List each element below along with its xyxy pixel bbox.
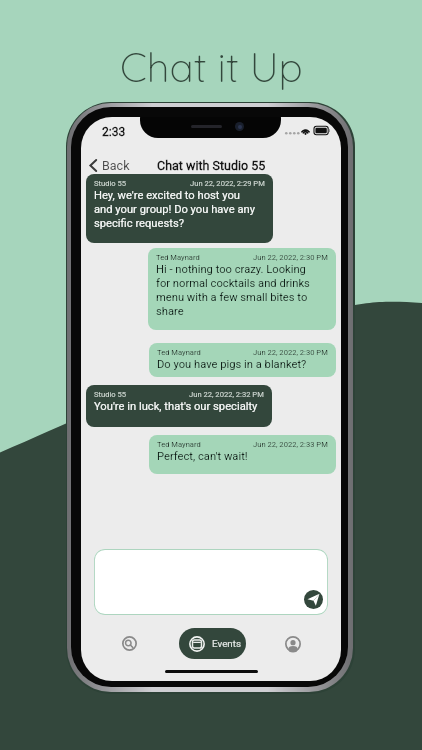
button[interactable]: Back — [87, 153, 132, 177]
staticText: Studio 55 — [94, 390, 127, 399]
staticText: You're in luck, that's our specialty — [94, 400, 266, 413]
staticText: Ted Maynard — [157, 348, 201, 357]
button[interactable]: Ted Maynard — [148, 248, 336, 330]
staticText: 2:33 — [102, 125, 126, 139]
button[interactable]: Profile — [282, 633, 304, 655]
staticText: Hey, we're excited to host you and your … — [94, 189, 255, 230]
staticText: Jun 22, 2022, 2:33 PM — [253, 440, 328, 449]
button[interactable]: Studio 55 — [86, 174, 273, 243]
staticText: Jun 22, 2022, 2:30 PM — [253, 348, 328, 357]
button[interactable]: Ted Maynard — [149, 343, 336, 377]
staticText: Jun 22, 2022, 2:30 PM — [253, 253, 328, 262]
staticText: Do you have pigs in a blanket? — [157, 358, 318, 371]
button[interactable]: Ted Maynard — [149, 435, 336, 474]
staticText: Ted Maynard — [157, 440, 201, 449]
button[interactable]: Studio 55 — [86, 385, 272, 427]
staticText: Jun 22, 2022, 2:32 PM — [189, 390, 264, 399]
button[interactable]: Send message — [94, 549, 328, 615]
staticText: Chat it Up — [120, 41, 303, 92]
button[interactable]: Events — [179, 628, 246, 659]
staticText: Back — [102, 158, 130, 173]
staticText: Hi - nothing too crazy. Looking for norm… — [156, 263, 318, 318]
staticText: Ted Maynard — [156, 253, 200, 262]
button[interactable]: Search — [118, 632, 140, 654]
button[interactable]: Send message — [304, 590, 323, 609]
staticText: Studio 55 — [94, 179, 127, 188]
staticText: Events — [212, 638, 241, 649]
staticText: Perfect, can't wait! — [157, 450, 318, 463]
staticText: Chat with Studio 55 — [157, 158, 266, 173]
staticText: Jun 22, 2022, 2:29 PM — [190, 179, 265, 188]
